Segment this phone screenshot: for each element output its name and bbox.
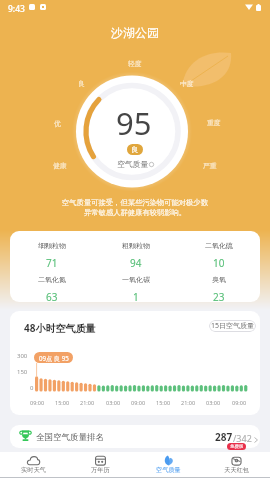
staticText: 09点 良 95 bbox=[39, 354, 69, 362]
staticText: 粗颗粒物 bbox=[122, 241, 150, 250]
staticText: 1 bbox=[133, 290, 139, 302]
staticText: 轻度 bbox=[128, 59, 142, 68]
staticText: 良 bbox=[131, 145, 139, 154]
staticText: 二氧化硫 bbox=[205, 241, 233, 250]
staticText: 21:00 bbox=[80, 399, 95, 406]
button[interactable]: 全国空气质量排名 bbox=[10, 425, 260, 448]
staticText: 二氧化氮 bbox=[38, 275, 66, 284]
staticText: 空气质量 bbox=[156, 466, 181, 474]
staticText: 300 bbox=[17, 352, 28, 360]
staticText: 23 bbox=[213, 290, 225, 302]
staticText: 287 bbox=[215, 430, 233, 444]
staticText: 95 bbox=[116, 102, 152, 144]
staticText: 全国空气质量排名 bbox=[36, 432, 104, 443]
staticText: 10 bbox=[213, 256, 225, 270]
staticText: 15日空气质量 bbox=[211, 321, 255, 331]
staticText: 一氧化碳 bbox=[122, 275, 150, 284]
staticText: 03:00 bbox=[106, 399, 121, 406]
staticText: 中度 bbox=[180, 79, 194, 88]
staticText: 21:00 bbox=[181, 399, 196, 406]
staticText: 空气质量可接受，但某些污染物可能对极少数 bbox=[62, 198, 208, 207]
staticText: 实时天气 bbox=[21, 466, 46, 474]
staticText: 重度 bbox=[207, 118, 221, 127]
button[interactable]: 15日空气质量 bbox=[209, 320, 256, 332]
button[interactable]: 万年历 bbox=[67, 452, 134, 478]
staticText: 空气质量 bbox=[117, 159, 149, 169]
staticText: 94 bbox=[130, 256, 142, 270]
staticText: 71 bbox=[46, 256, 58, 270]
staticText: 03:00 bbox=[206, 399, 221, 406]
staticText: 9:43 bbox=[8, 3, 25, 15]
staticText: 15:00 bbox=[55, 399, 70, 406]
staticText: 细颗粒物 bbox=[38, 241, 66, 250]
button[interactable]: 天天红包 bbox=[202, 452, 270, 478]
staticText: 09:00 bbox=[30, 399, 45, 406]
staticText: 15:00 bbox=[156, 399, 171, 406]
staticText: 天天红包 bbox=[224, 466, 249, 474]
staticText: 健康 bbox=[53, 161, 67, 170]
staticText: 异常敏感人群健康有较弱影响。 bbox=[84, 208, 187, 217]
staticText: 0 bbox=[30, 384, 34, 392]
staticText: 免费版 bbox=[230, 444, 244, 450]
staticText: 严重 bbox=[203, 161, 217, 170]
staticText: 优 bbox=[54, 119, 61, 128]
button[interactable]: 实时天气 bbox=[0, 452, 67, 478]
staticText: 09:00 bbox=[232, 399, 247, 406]
staticText: /342 bbox=[233, 432, 252, 444]
staticText: 良 bbox=[78, 79, 85, 88]
staticText: 48小时空气质量 bbox=[24, 321, 96, 335]
staticText: 150 bbox=[17, 368, 28, 376]
button[interactable]: 空气质量 bbox=[134, 452, 202, 478]
staticText: 63 bbox=[46, 290, 58, 302]
staticText: 沙湖公园 bbox=[111, 25, 159, 40]
staticText: 万年历 bbox=[91, 466, 110, 474]
staticText: 臭氧 bbox=[212, 275, 226, 284]
staticText: 09:00 bbox=[131, 399, 146, 406]
